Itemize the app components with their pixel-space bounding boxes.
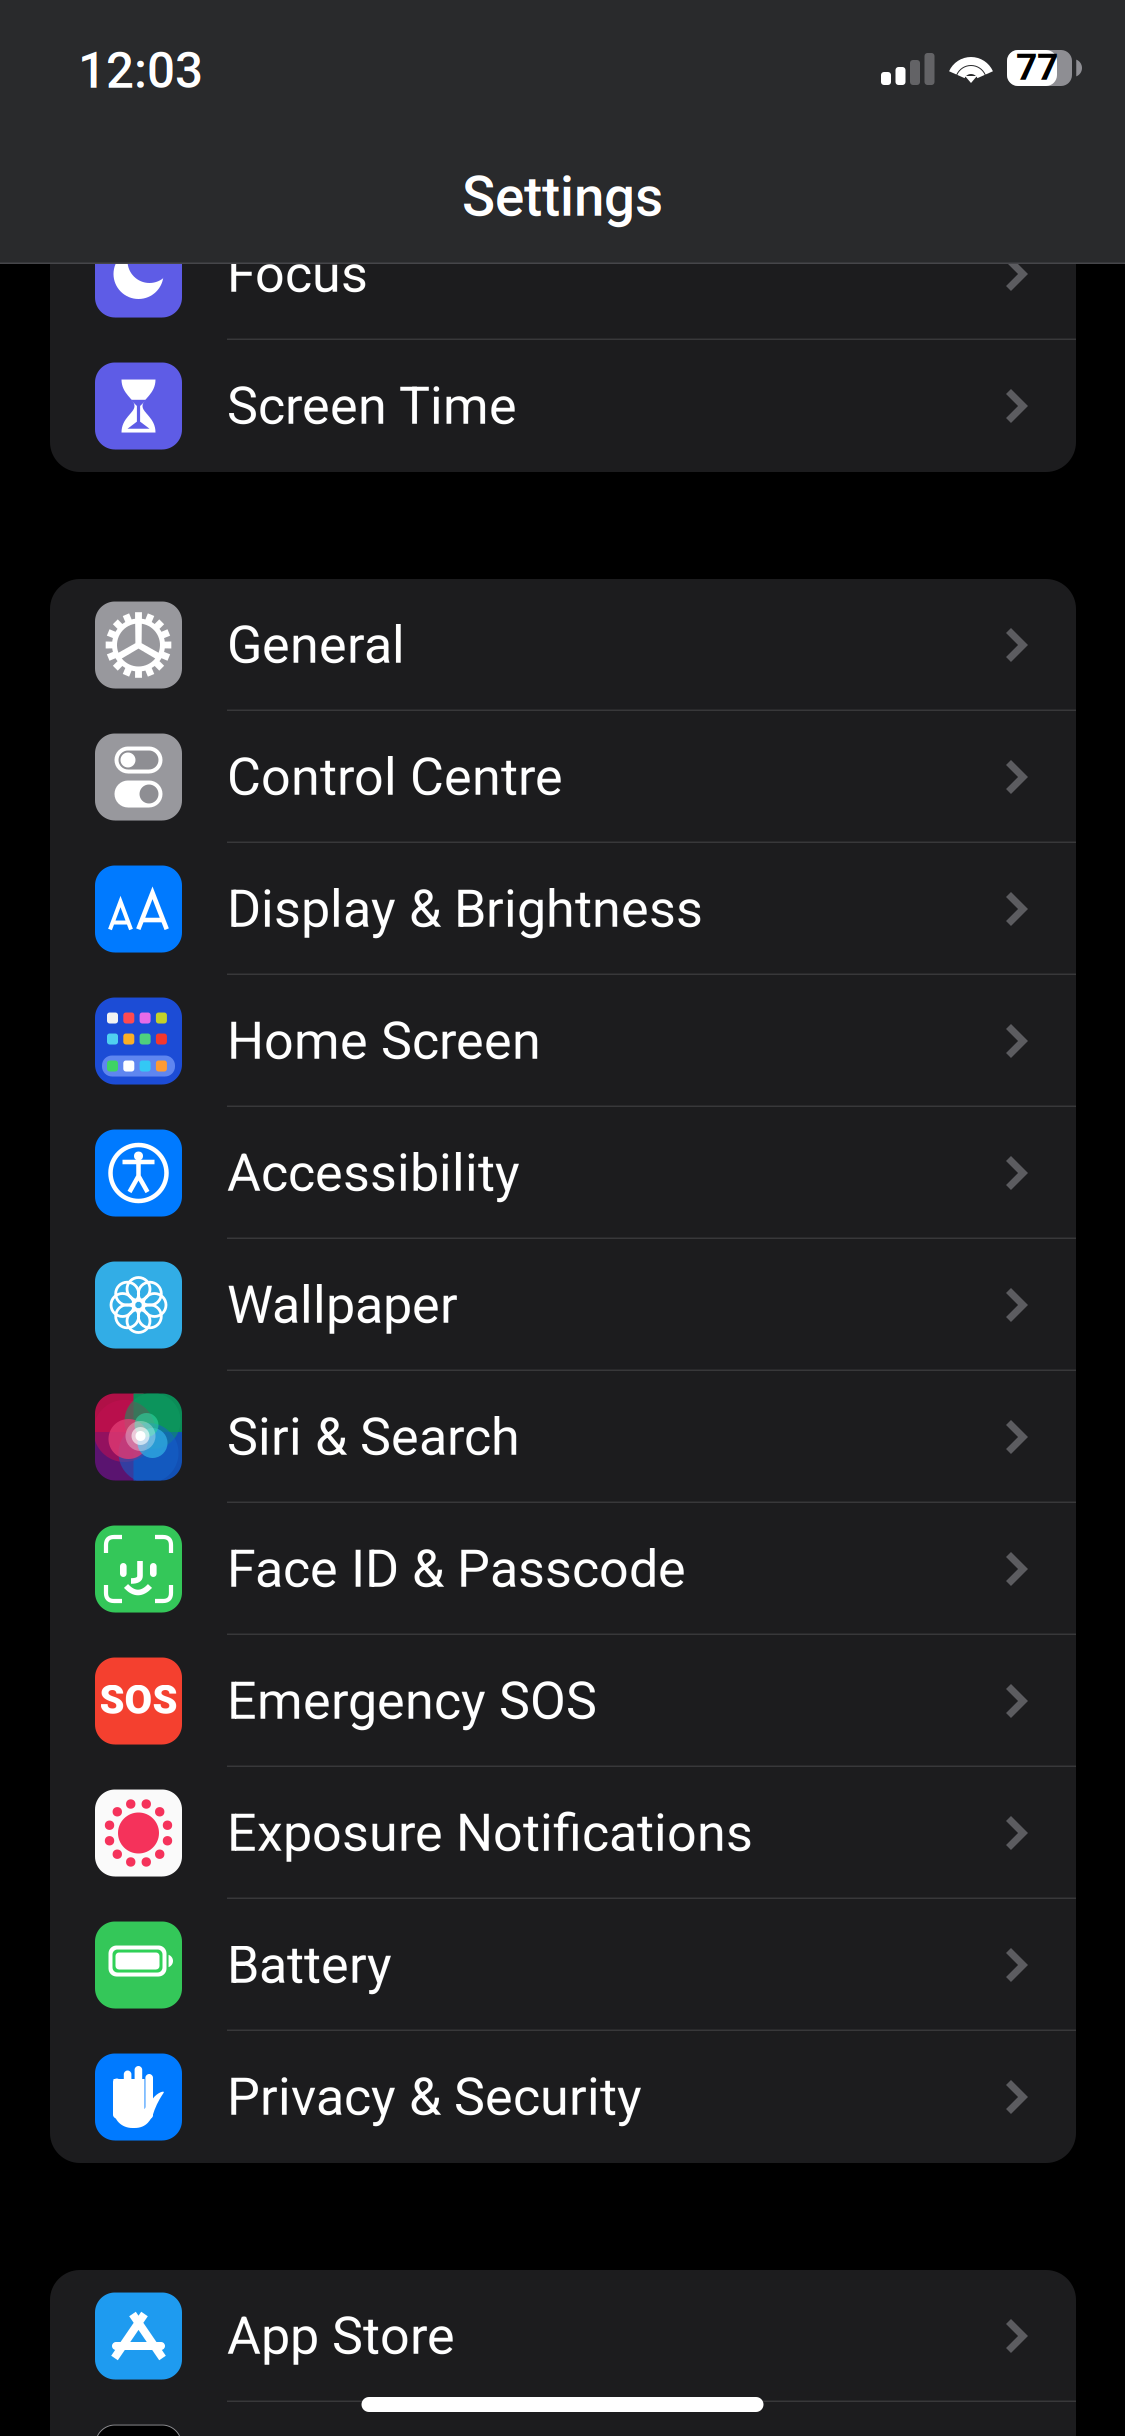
staticText: Siri & Search — [227, 1406, 520, 1467]
button[interactable]: Face ID & Passcode — [50, 1503, 1076, 1635]
button[interactable]: Wallet — [50, 2402, 1076, 2436]
button[interactable]: SOS — [50, 1635, 1076, 1767]
staticText: Face ID & Passcode — [227, 1538, 686, 1599]
button[interactable]: Display & Brightness — [50, 843, 1076, 975]
button[interactable]: App Store — [50, 2270, 1076, 2402]
button[interactable]: Siri & Search — [50, 1371, 1076, 1503]
staticText: General — [227, 614, 405, 675]
button[interactable]: Wallpaper — [50, 1239, 1076, 1371]
button[interactable]: Control Centre — [50, 711, 1076, 843]
button[interactable]: Screen Time — [50, 340, 1076, 472]
staticText: Battery — [227, 1934, 392, 1995]
staticText: 77 — [1016, 45, 1058, 89]
staticText: Focus — [227, 243, 368, 304]
staticText: Control Centre — [227, 746, 563, 807]
button[interactable]: Accessibility — [50, 1107, 1076, 1239]
staticText: SOS — [99, 1677, 177, 1723]
button[interactable]: Exposure Notifications — [50, 1767, 1076, 1899]
staticText: App Store — [227, 2305, 455, 2366]
staticText: Emergency SOS — [227, 1670, 597, 1731]
staticText: Exposure Notifications — [227, 1802, 753, 1863]
button[interactable]: Focus — [50, 208, 1076, 340]
button[interactable]: Privacy & Security — [50, 2031, 1076, 2163]
staticText: Privacy & Security — [227, 2066, 642, 2127]
staticText: 12:03 — [78, 42, 203, 100]
staticText: Screen Time — [227, 375, 517, 436]
button[interactable]: Battery — [50, 1899, 1076, 2031]
staticText: Accessibility — [227, 1142, 520, 1203]
staticText: Display & Brightness — [227, 878, 703, 939]
button[interactable]: General — [50, 579, 1076, 711]
staticText: Settings — [462, 165, 663, 229]
staticText: Home Screen — [227, 1010, 541, 1071]
button[interactable]: Home Screen — [50, 975, 1076, 1107]
staticText: Wallpaper — [227, 1274, 458, 1335]
